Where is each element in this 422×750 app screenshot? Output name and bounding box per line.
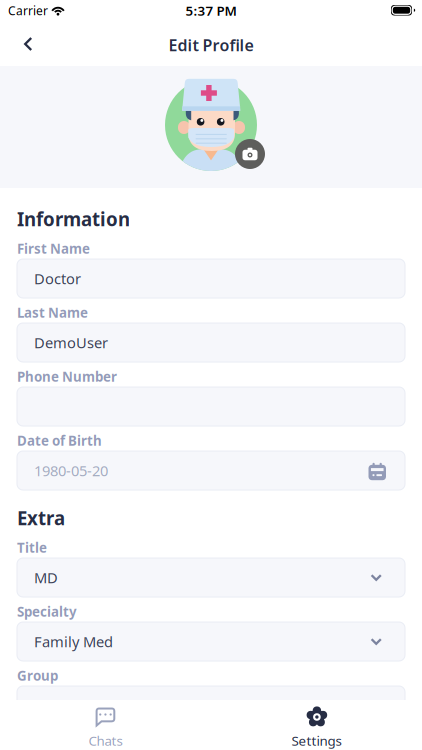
staticText: Doctor [34,269,81,288]
staticText: 5:37 PM [185,2,236,19]
staticText: Date of Birth [17,432,102,449]
button[interactable]: Back [0,29,49,63]
staticText: Carrier [8,2,48,18]
staticText: Family Med [34,632,113,651]
button[interactable]: First Name [17,243,405,298]
staticText: DemoUser [34,333,108,352]
staticText: Last Name [17,304,88,321]
staticText: Settings [291,732,341,749]
staticText: MD [34,568,58,587]
staticText: Information [17,207,130,231]
staticText: 1980-05-20 [34,461,108,480]
staticText: First Name [17,240,90,257]
staticText: Extra [17,506,65,530]
staticText: Phone Number [17,368,117,385]
staticText: Specialty [17,603,77,620]
staticText: Chats [88,732,122,749]
staticText: Edit Profile [168,34,253,56]
staticText: Group [17,667,58,684]
button[interactable]: Specialty [17,606,405,661]
button[interactable]: Phone Number [17,371,405,426]
button[interactable]: Last Name [17,307,405,362]
button[interactable]: Title [17,542,405,597]
staticText: Title [17,539,47,556]
button[interactable]: Date of Birth [17,435,405,490]
button[interactable]: Group [17,670,405,725]
button[interactable]: Chats [0,700,211,750]
button[interactable]: Change photo [235,139,265,169]
button[interactable]: Settings [211,700,422,750]
